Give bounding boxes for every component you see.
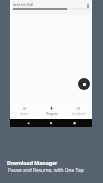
button[interactable]: Pause download xyxy=(78,78,90,90)
staticText: Download Manager xyxy=(7,159,58,166)
button[interactable]: Completed xyxy=(65,104,92,119)
staticText: Progress xyxy=(46,112,58,116)
staticText: Completed xyxy=(72,112,86,116)
staticText: Get it Let it Fall xyxy=(13,3,34,7)
button[interactable]: Progress xyxy=(38,104,65,119)
staticText: Pause and Resume, with One Tap xyxy=(8,167,84,174)
staticText: Queue xyxy=(20,112,29,116)
button[interactable]: Queue xyxy=(10,104,38,119)
button[interactable]: More options xyxy=(83,1,91,10)
